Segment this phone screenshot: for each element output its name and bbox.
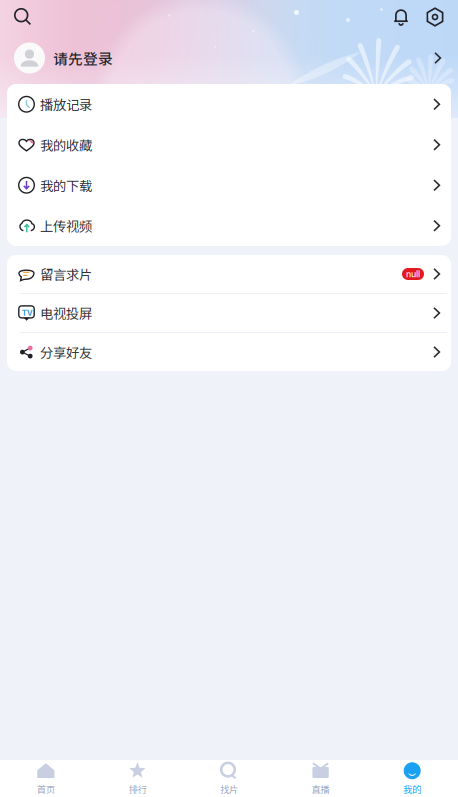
staticText: 找片 — [220, 782, 238, 796]
button[interactable]: 我的 — [366, 760, 458, 797]
staticText: 上传视频 — [40, 216, 92, 235]
staticText: 我的下载 — [40, 176, 92, 195]
button[interactable]: 我的收藏 — [7, 124, 451, 165]
staticText: 我的收藏 — [40, 135, 92, 154]
staticText: 我的 — [403, 782, 421, 796]
button[interactable]: 分享好友 — [7, 333, 451, 371]
button[interactable]: 我的下载 — [7, 165, 451, 205]
staticText: 留言求片 — [40, 264, 92, 284]
staticText: null — [406, 269, 420, 279]
button[interactable]: 留言求片 — [7, 255, 451, 293]
staticText: 首页 — [37, 782, 55, 796]
button[interactable]: 消息通知 — [384, 1, 418, 33]
staticText: 请先登录 — [53, 47, 113, 69]
staticText: 播放记录 — [40, 95, 92, 114]
button[interactable]: 上传视频 — [7, 205, 451, 246]
button[interactable]: 找片 — [183, 760, 275, 797]
button[interactable]: 设置 — [418, 1, 452, 33]
staticText: 直播 — [312, 782, 330, 796]
button[interactable]: TV — [7, 294, 451, 332]
button[interactable]: 首页 — [0, 760, 92, 797]
staticText: 电视投屏 — [40, 303, 92, 323]
button[interactable]: 排行 — [92, 760, 183, 797]
button[interactable]: 搜索 — [6, 1, 40, 33]
staticText: 排行 — [128, 782, 146, 796]
staticText: 分享好友 — [40, 342, 92, 362]
staticText: TV — [22, 308, 33, 318]
button[interactable]: 播放记录 — [7, 84, 451, 124]
button[interactable]: 直播 — [275, 760, 366, 797]
button[interactable]: 请先登录 — [0, 34, 458, 82]
